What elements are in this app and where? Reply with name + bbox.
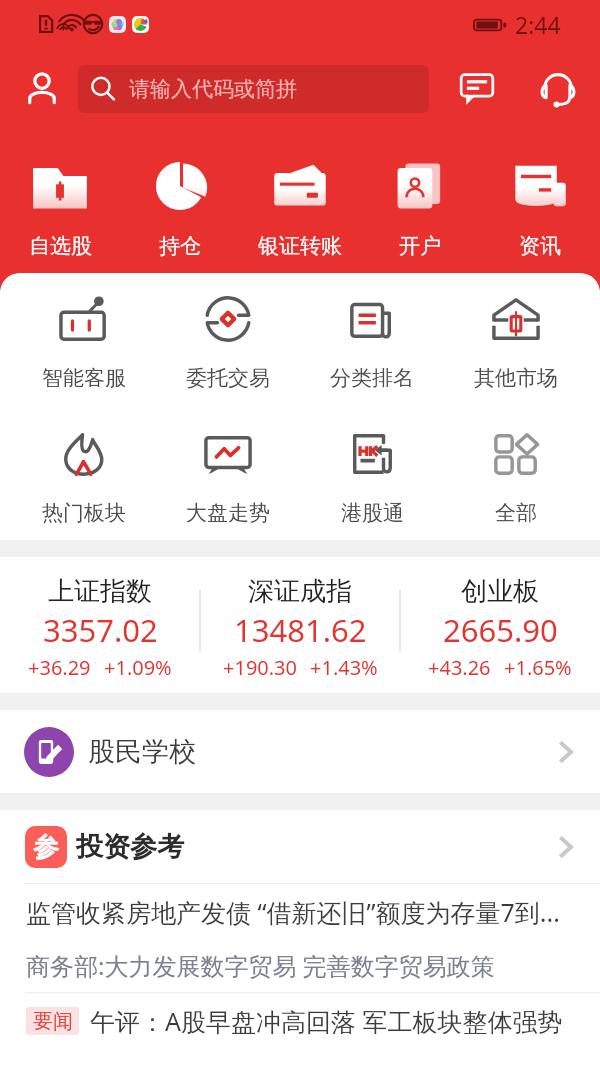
staticText: 其他市场 (474, 365, 558, 391)
staticText: 请输入代码或简拼 (129, 76, 297, 102)
staticText: 商务部:大力发展数字贸易 完善数字贸易政策 (26, 949, 495, 982)
button[interactable]: 大盘走势 (156, 430, 300, 526)
staticText: 持仓 (159, 233, 201, 259)
staticText: 委托交易 (186, 365, 270, 391)
staticText: 股民学校 (88, 735, 196, 769)
button[interactable]: Messages (429, 48, 507, 130)
button[interactable]: 监管收紧房地产发债 “借新还旧”额度为存量7到... (0, 884, 600, 939)
button[interactable]: 热门板块 (12, 430, 156, 526)
staticText: 上证指数 (48, 575, 152, 608)
button[interactable]: 智能客服 (12, 295, 156, 391)
staticText: 要闻 (33, 1009, 73, 1034)
staticText: 大盘走势 (186, 500, 270, 526)
staticText: +43.26 (428, 654, 491, 681)
staticText: 13481.62 (234, 609, 367, 651)
staticText: +36.29 (28, 654, 91, 681)
button[interactable]: 委托交易 (156, 295, 300, 391)
staticText: 2665.90 (443, 609, 558, 651)
button[interactable]: 资讯 (480, 158, 600, 259)
button[interactable]: 上证指数 (0, 557, 200, 681)
staticText: 分类排名 (330, 365, 414, 391)
button[interactable]: 持仓 (120, 158, 240, 259)
button[interactable]: Customer service (507, 48, 577, 130)
button[interactable]: 创业板 (400, 557, 600, 681)
staticText: 自选股 (29, 233, 92, 259)
staticText: 热门板块 (42, 500, 126, 526)
staticText: +190.30 (223, 654, 297, 681)
staticText: 港股通 (341, 500, 404, 526)
staticText: 智能客服 (42, 365, 126, 391)
button[interactable]: 开户 (360, 158, 480, 259)
button[interactable]: 自选股 (0, 158, 120, 259)
button[interactable]: 港股通 (300, 430, 444, 526)
button[interactable]: 深证成指 (200, 557, 400, 681)
staticText: +1.09% (104, 654, 172, 681)
button[interactable]: Profile (0, 48, 78, 130)
staticText: 深证成指 (248, 575, 352, 608)
staticText: 全部 (495, 500, 537, 526)
button[interactable]: 银证转账 (240, 158, 360, 259)
staticText: +1.43% (310, 654, 378, 681)
staticText: 参 (33, 831, 59, 864)
button[interactable]: 参 (0, 810, 600, 883)
button[interactable]: 全部 (444, 430, 588, 526)
staticText: 资讯 (519, 233, 561, 259)
staticText: 银证转账 (258, 233, 342, 259)
button[interactable]: 股民学校 (0, 710, 600, 793)
staticText: 创业板 (461, 575, 539, 608)
button[interactable]: 商务部:大力发展数字贸易 完善数字贸易政策 (0, 939, 600, 992)
staticText: 监管收紧房地产发债 “借新还旧”额度为存量7到... (26, 895, 560, 929)
staticText: 午评：A股早盘冲高回落 军工板块整体强势 (90, 1004, 563, 1038)
button[interactable]: 请输入代码或简拼 (78, 65, 429, 113)
staticText: +1.65% (504, 654, 572, 681)
staticText: 开户 (399, 233, 441, 259)
staticText: 3357.02 (43, 609, 158, 651)
staticText: 投资参考 (76, 830, 184, 864)
button[interactable]: 要闻 (0, 993, 600, 1049)
staticText: 2:44 (515, 9, 561, 40)
button[interactable]: 其他市场 (444, 295, 588, 391)
button[interactable]: 分类排名 (300, 295, 444, 391)
